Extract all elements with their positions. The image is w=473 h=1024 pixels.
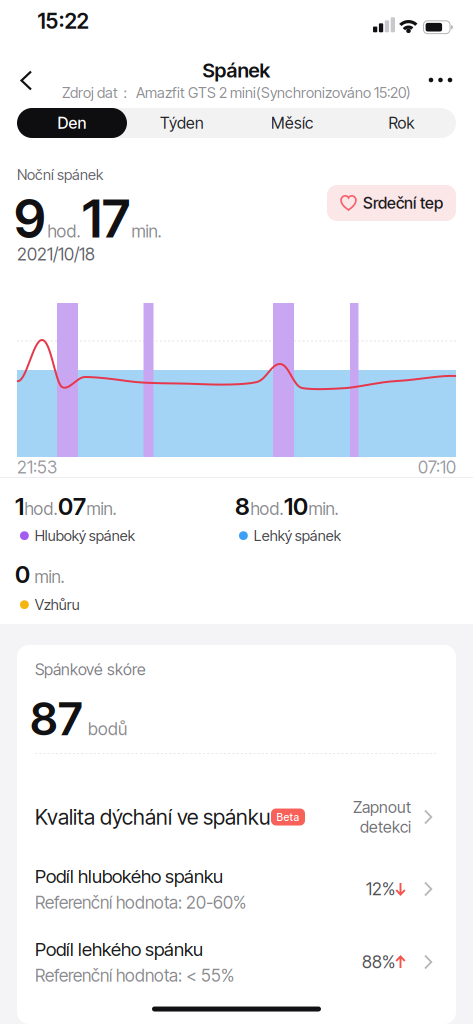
button[interactable]: More [420, 68, 464, 92]
staticText: 17 [82, 188, 130, 249]
staticText: Zdroj dat： Amazfit GTS 2 mini(Synchroniz… [62, 84, 411, 102]
staticText: Referenční hodnota: < 55% [35, 965, 234, 986]
staticText: 07 [58, 492, 86, 520]
staticText: 88% [362, 952, 395, 972]
staticText: 9 [14, 188, 46, 249]
button[interactable]: Srdeční tep [327, 185, 456, 221]
button[interactable]: Týden [127, 108, 237, 138]
staticText: Den [57, 114, 86, 132]
staticText: Beta [276, 811, 299, 823]
staticText: Zapnout [353, 798, 411, 816]
button[interactable]: Podíl hlubokého spánku [17, 853, 456, 925]
staticText: 2021/10/18 [17, 244, 95, 264]
staticText: 07:10 [418, 457, 456, 477]
staticText: hod. [250, 498, 283, 519]
staticText: 0 [15, 560, 30, 588]
staticText: Noční spánek [17, 166, 103, 183]
staticText: 10 [284, 492, 308, 520]
staticText: hod. [24, 498, 57, 519]
staticText: min. [308, 498, 338, 519]
staticText: 87 [30, 692, 82, 745]
staticText: 21:53 [17, 457, 57, 477]
button[interactable]: Back [8, 58, 48, 102]
button[interactable]: Den [17, 108, 127, 138]
staticText: hod. [47, 221, 80, 241]
staticText: Hluboký spánek [35, 527, 135, 544]
staticText: min. [86, 498, 116, 519]
staticText: min. [131, 221, 161, 241]
staticText: bodů [88, 719, 127, 739]
button[interactable]: Měsíc [237, 108, 347, 138]
staticText: Rok [388, 114, 414, 132]
staticText: Vzhůru [35, 596, 80, 613]
staticText: Podíl lehkého spánku [35, 938, 203, 960]
staticText: Spánkové skóre [35, 660, 146, 679]
staticText: Referenční hodnota: 20-60% [35, 892, 246, 913]
staticText: Kvalita dýchání ve spánku [35, 804, 270, 830]
button[interactable]: Kvalita dýchání ve spánku [17, 785, 456, 849]
staticText: 15:22 [37, 8, 88, 34]
button[interactable]: Rok [347, 108, 456, 138]
staticText: Týden [160, 114, 204, 132]
staticText: 12% [366, 879, 395, 899]
staticText: Srdeční tep [363, 194, 443, 212]
staticText: Lehký spánek [254, 527, 341, 544]
staticText: Podíl hlubokého spánku [35, 865, 223, 887]
staticText: Měsíc [271, 114, 313, 132]
staticText: 1 [15, 492, 24, 520]
staticText: 8 [235, 492, 250, 520]
button[interactable]: Podíl lehkého spánku [17, 926, 456, 998]
staticText: min. [30, 566, 64, 587]
staticText: detekci [360, 817, 411, 836]
staticText: Spánek [202, 58, 270, 82]
